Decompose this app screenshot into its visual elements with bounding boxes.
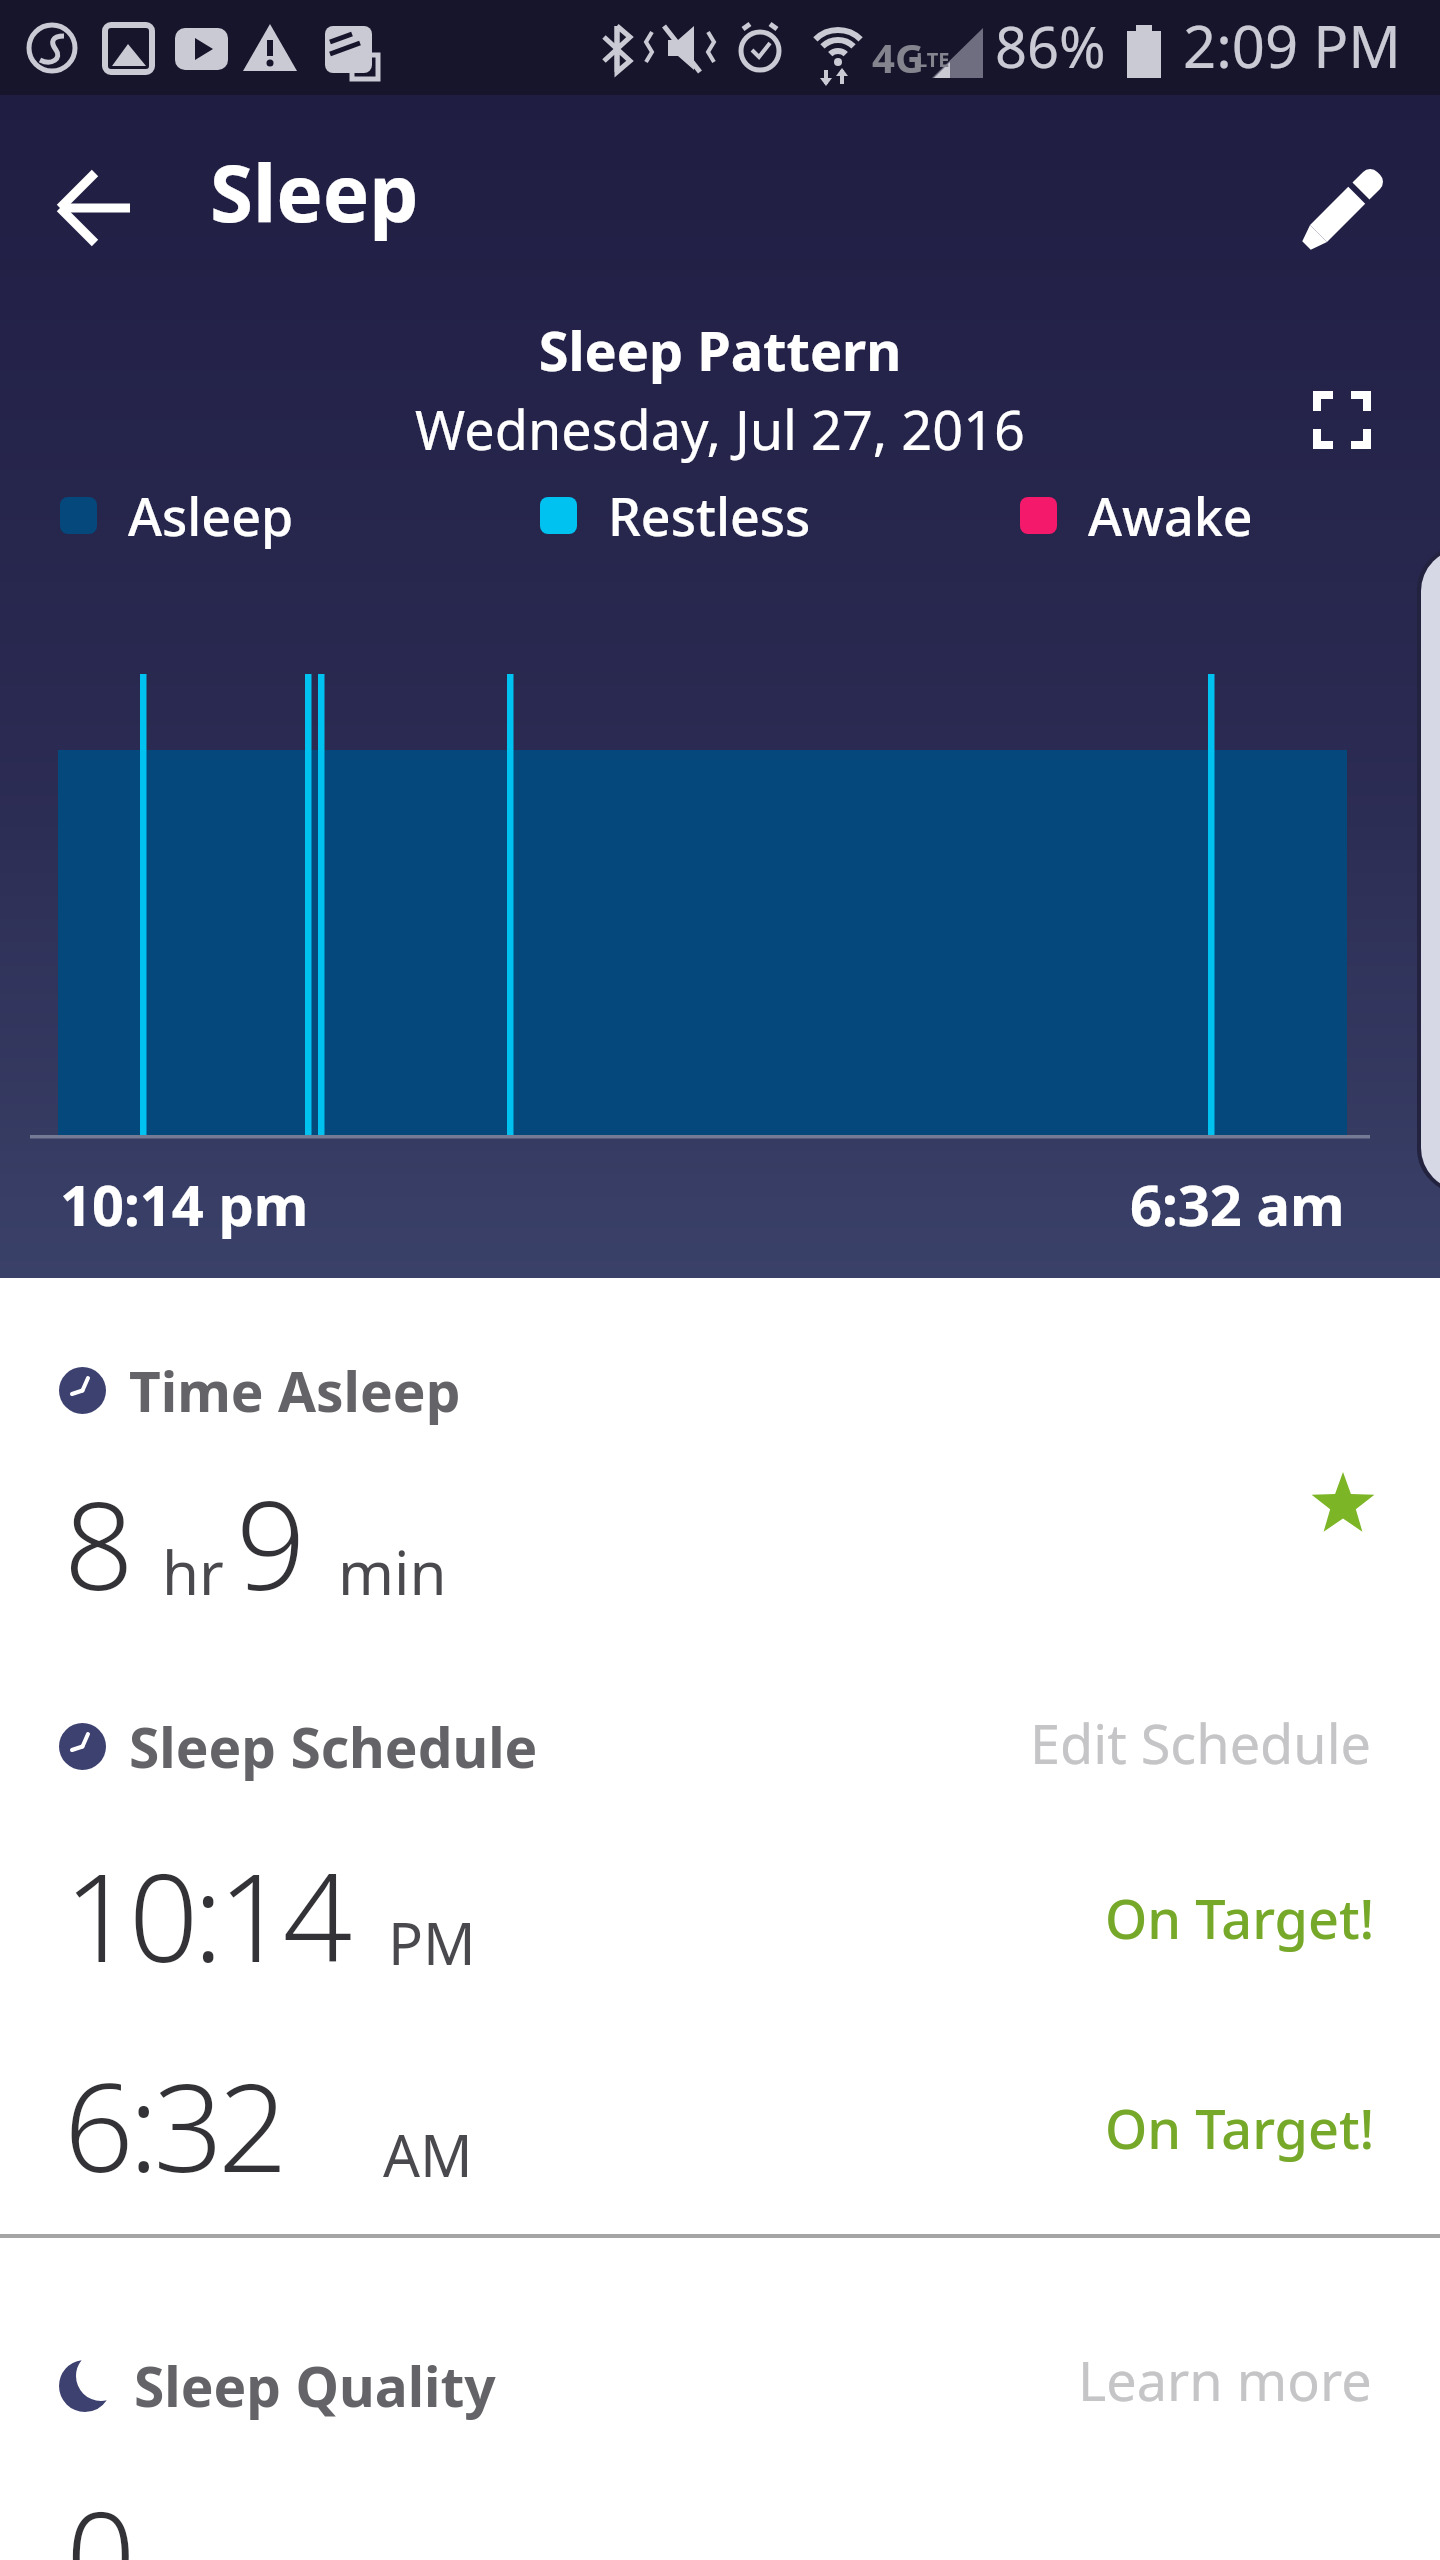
staticText: Sleep Pattern [0,313,1440,387]
staticText: hr [162,1531,224,1613]
staticText: Awake [1088,480,1253,551]
staticText: On Target! [1105,1881,1375,1955]
staticText: Sleep Schedule [129,1709,538,1784]
staticText: AM [383,2115,473,2194]
staticText: 10:14 pm [60,1166,309,1242]
staticText: 8 [64,1460,133,1626]
staticText: Wednesday, Jul 27, 2016 [0,392,1440,466]
staticText: 9 [236,1460,305,1626]
button[interactable]: Learn more [1078,2343,1372,2417]
staticText: Restless [608,480,811,551]
staticText: LTE [916,46,950,73]
button[interactable] [1299,163,1389,253]
button[interactable]: Sleep Quality [59,2348,496,2423]
staticText: 2:09 PM [1183,6,1401,85]
staticText: 86% [995,8,1106,84]
staticText: Sleep [210,139,419,245]
staticText: Asleep [128,480,294,551]
button[interactable]: Edit Schedule [1030,1706,1372,1780]
staticText: min [338,1531,447,1613]
button[interactable] [48,161,142,255]
button[interactable]: Sleep Schedule [59,1709,538,1784]
staticText: Time Asleep [129,1353,461,1428]
button[interactable]: Time Asleep [59,1353,461,1428]
staticText: 0 [66,2470,135,2560]
staticText: 4G [872,30,924,84]
button[interactable] [1298,376,1386,464]
staticText: On Target! [1105,2091,1375,2165]
staticText: Sleep Quality [134,2348,496,2423]
staticText: 10:14 [64,1832,348,1998]
staticText: PM [388,1903,476,1982]
staticText: 6:32 [64,2042,283,2208]
staticText: 6:32 am [1130,1166,1345,1242]
